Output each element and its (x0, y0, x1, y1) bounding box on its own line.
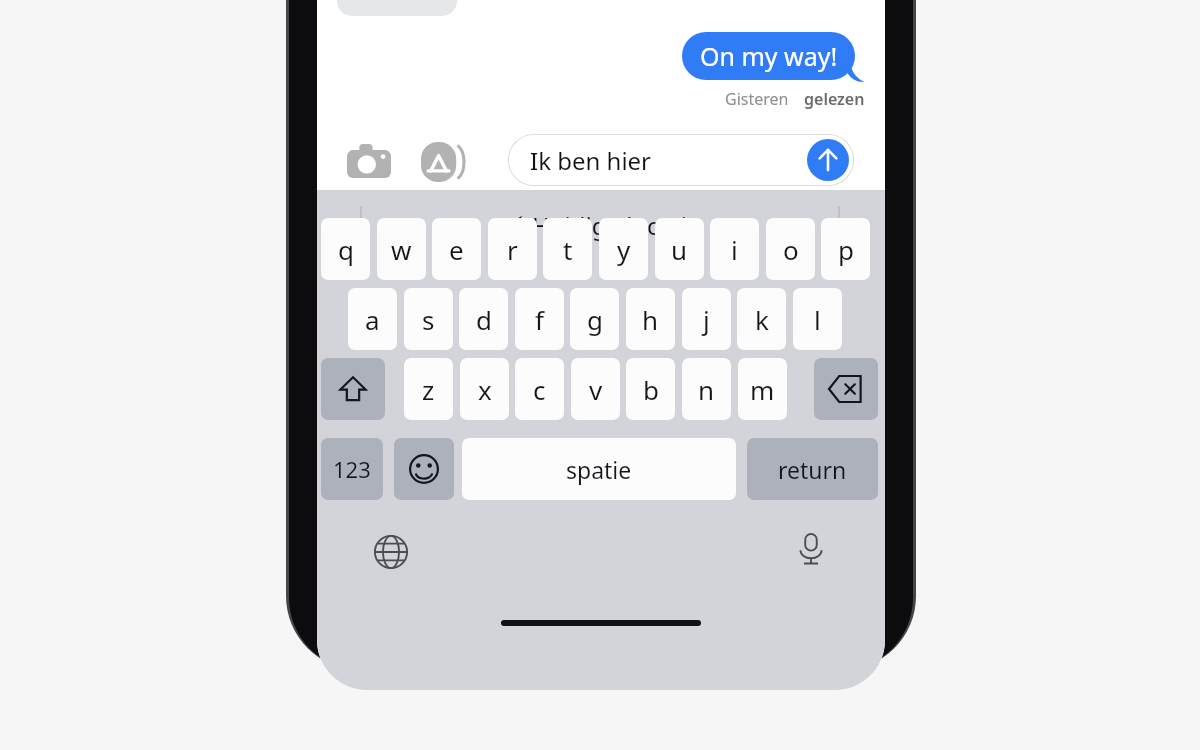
button[interactable]: 123 (321, 438, 383, 500)
button[interactable]: g (570, 288, 619, 350)
staticText: e (449, 232, 464, 267)
staticText: t (563, 232, 573, 267)
button[interactable]: Dictate (789, 528, 833, 572)
staticText: Huidige locatie (532, 209, 701, 242)
button[interactable]: Ik ben hier (508, 134, 854, 186)
button[interactable]: Emoji (394, 438, 454, 500)
staticText: d (476, 302, 492, 337)
button[interactable]: m (738, 358, 787, 420)
button[interactable]: y (599, 218, 648, 280)
button[interactable]: x (460, 358, 509, 420)
button[interactable]: z (404, 358, 453, 420)
staticText: j (703, 302, 710, 337)
staticText: c (533, 372, 546, 407)
staticText: f (535, 302, 544, 337)
staticText: On my way! (700, 39, 838, 73)
button[interactable]: e (432, 218, 481, 280)
staticText: a (365, 302, 380, 337)
button[interactable]: v (571, 358, 620, 420)
button[interactable]: spatie (462, 438, 736, 500)
button[interactable]: i (710, 218, 759, 280)
button[interactable]: j (682, 288, 731, 350)
button[interactable]: n (682, 358, 731, 420)
staticText: r (507, 232, 518, 267)
staticText: Ik ben hier (530, 144, 652, 177)
button[interactable]: a (348, 288, 397, 350)
button[interactable]: Camera (347, 138, 393, 184)
button[interactable]: t (543, 218, 592, 280)
staticText: v (589, 372, 603, 407)
staticText: z (422, 372, 435, 407)
staticText: b (643, 372, 659, 407)
button[interactable]: Backspace (814, 358, 878, 420)
staticText: k (755, 302, 769, 337)
button[interactable]: s (404, 288, 453, 350)
button[interactable]: d (459, 288, 508, 350)
staticText: i (731, 232, 738, 267)
button[interactable]: r (488, 218, 537, 280)
staticText: g (587, 302, 603, 337)
button[interactable]: c (515, 358, 564, 420)
staticText: Gisteren (725, 88, 793, 110)
button[interactable]: Huidige locatie (427, 206, 775, 244)
button[interactable]: u (655, 218, 704, 280)
button[interactable]: k (737, 288, 786, 350)
button[interactable]: h (626, 288, 675, 350)
button[interactable]: Shift (321, 358, 385, 420)
staticText: p (838, 232, 854, 267)
staticText: l (814, 302, 821, 337)
staticText: w (391, 232, 412, 267)
button[interactable]: o (766, 218, 815, 280)
button[interactable]: w (377, 218, 426, 280)
button[interactable]: return (747, 438, 878, 500)
staticText: return (778, 454, 847, 485)
button[interactable]: q (321, 218, 370, 280)
staticText: y (617, 232, 631, 267)
button[interactable]: App Store (421, 142, 465, 182)
staticText: h (642, 302, 659, 337)
staticText: x (478, 372, 492, 407)
staticText: u (671, 232, 688, 267)
button[interactable]: l (793, 288, 842, 350)
staticText: q (338, 232, 354, 267)
button[interactable]: Send (807, 139, 849, 181)
staticText: 123 (333, 454, 371, 484)
staticText: m (750, 372, 775, 407)
button[interactable]: p (821, 218, 870, 280)
staticText: gelezen (804, 88, 865, 110)
button[interactable]: b (626, 358, 675, 420)
button[interactable]: f (515, 288, 564, 350)
button[interactable]: On my way! (682, 32, 855, 80)
staticText: spatie (566, 454, 632, 485)
staticText: n (698, 372, 715, 407)
staticText: o (783, 232, 799, 267)
button[interactable]: Switch keyboard (369, 530, 413, 574)
staticText: s (422, 302, 435, 337)
